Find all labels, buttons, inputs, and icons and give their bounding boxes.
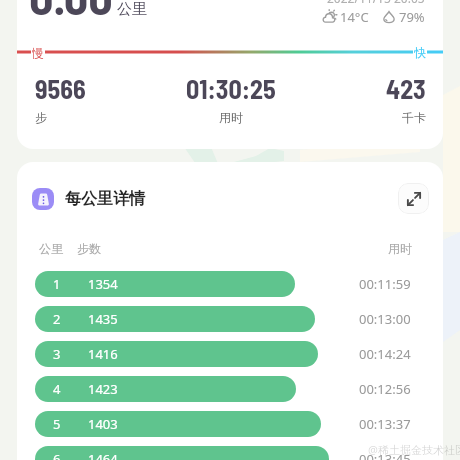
button[interactable]: 4 [35,376,296,402]
staticText: 00:13:00 [359,310,411,328]
button[interactable]: 3 [35,341,318,367]
staticText: 423 [386,73,426,104]
staticText: 公里 [39,241,63,256]
staticText: 1403 [88,415,118,433]
staticText: 千卡 [402,110,426,125]
button[interactable]: 6 [35,446,329,460]
staticText: 0.00 [29,0,113,25]
staticText: 步数 [77,241,101,256]
staticText: 00:14:24 [359,345,411,363]
staticText: 慢 [32,45,44,59]
staticText: 公里 [117,0,147,19]
staticText: 14°C [340,8,369,26]
staticText: 快 [414,45,426,59]
staticText: 5 [53,415,61,433]
staticText: 1435 [88,310,118,328]
staticText: 1 [53,275,61,293]
staticText: 1464 [88,450,118,460]
staticText: 3 [53,345,61,363]
staticText: 每公里详情 [65,189,145,209]
staticText: 79% [399,8,425,26]
staticText: 用时 [388,241,412,256]
button[interactable]: 5 [35,411,321,437]
staticText: 1416 [88,345,118,363]
staticText: 01:30:25 [186,73,276,104]
staticText: 1354 [88,275,118,293]
staticText: 2 [53,310,61,328]
staticText: 00:11:59 [359,275,411,293]
staticText: 用时 [219,110,243,125]
staticText: 00:13:45 [359,450,411,460]
staticText: 4 [53,380,61,398]
button[interactable]: 1 [35,271,295,297]
staticText: 2022/11/15 20:05 [327,0,425,6]
staticText: 步 [35,110,47,125]
staticText: 6 [53,450,61,460]
staticText: 00:13:37 [359,415,411,433]
staticText: 9566 [35,73,86,104]
staticText: @稀土掘金技术社区 [368,442,460,457]
staticText: 1423 [88,380,118,398]
button[interactable]: Expand [398,183,429,214]
button[interactable]: 2 [35,306,315,332]
staticText: 00:12:56 [359,380,411,398]
